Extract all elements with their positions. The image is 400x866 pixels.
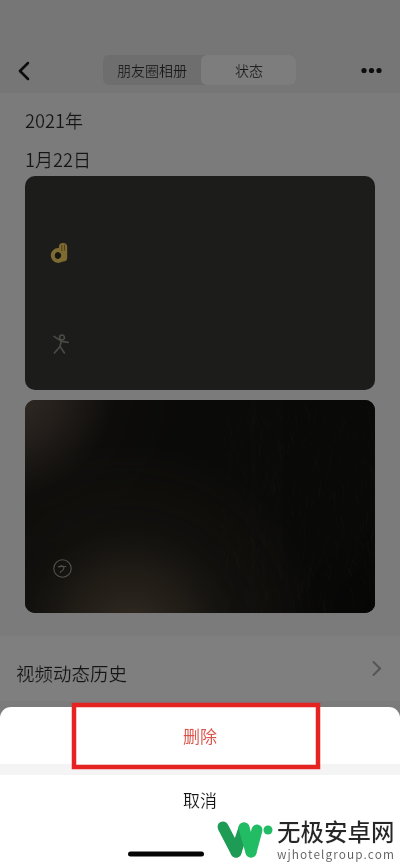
button[interactable] — [25, 400, 375, 613]
button[interactable]: 状态 — [201, 55, 296, 85]
staticText: 1月22日 — [25, 146, 91, 172]
staticText: wjhotelgroup.com — [277, 845, 395, 862]
button[interactable] — [25, 176, 375, 390]
staticText: 状态 — [235, 60, 263, 80]
staticText: 朋友圈相册 — [117, 60, 187, 80]
staticText: 2021年 — [25, 107, 83, 133]
staticText: 删除 — [183, 723, 217, 748]
button[interactable]: 删除 — [0, 707, 400, 764]
button[interactable]: 取消 — [0, 775, 400, 823]
button[interactable]: Back — [2, 51, 42, 91]
staticText: 视频动态历史 — [16, 660, 128, 687]
button[interactable]: More options — [348, 51, 392, 95]
button[interactable]: 朋友圈相册 — [103, 55, 201, 85]
button[interactable]: 视频动态历史 — [0, 636, 400, 701]
staticText: 取消 — [183, 787, 217, 812]
staticText: 无极安卓网 — [277, 814, 395, 848]
